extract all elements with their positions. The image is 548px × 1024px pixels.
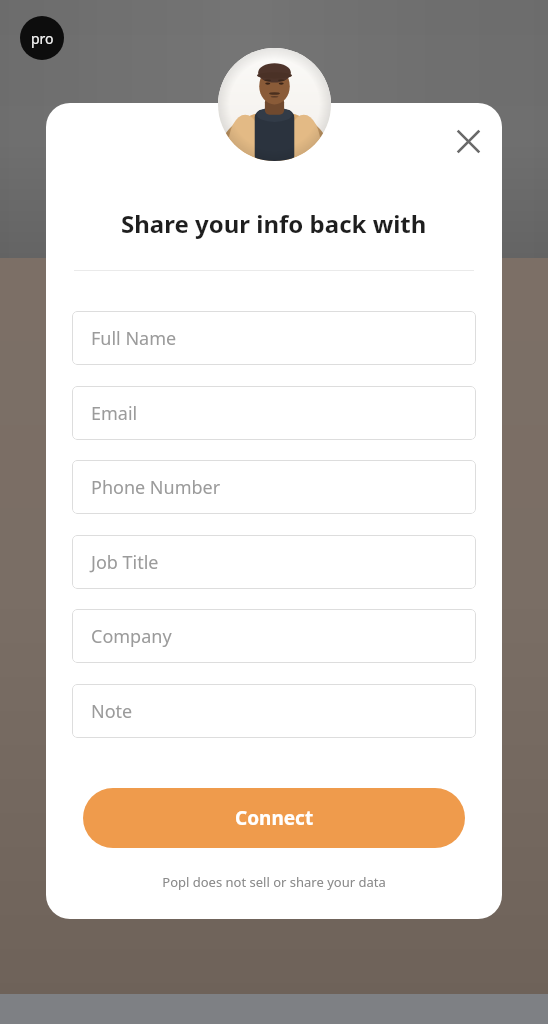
staticText: Note [91, 699, 133, 724]
button[interactable]: Popl Pro [20, 16, 64, 60]
staticText: pro [31, 29, 54, 48]
button[interactable]: Email [72, 386, 476, 440]
staticText: Full Name [91, 326, 177, 351]
staticText: Email [91, 401, 138, 426]
staticText: Popl does not sell or share your data [162, 873, 386, 891]
staticText: Connect [235, 805, 314, 831]
staticText: Share your info back with [121, 207, 427, 240]
staticText: Company [91, 624, 172, 649]
button[interactable]: Company [72, 609, 476, 663]
button[interactable]: Job Title [72, 535, 476, 589]
staticText: Job Title [91, 550, 159, 575]
button[interactable]: Connect [83, 788, 465, 848]
staticText: Phone Number [91, 475, 221, 500]
button[interactable]: Full Name [72, 311, 476, 365]
button[interactable]: Phone Number [72, 460, 476, 514]
button[interactable]: Note [72, 684, 476, 738]
button[interactable]: Close [444, 117, 492, 165]
